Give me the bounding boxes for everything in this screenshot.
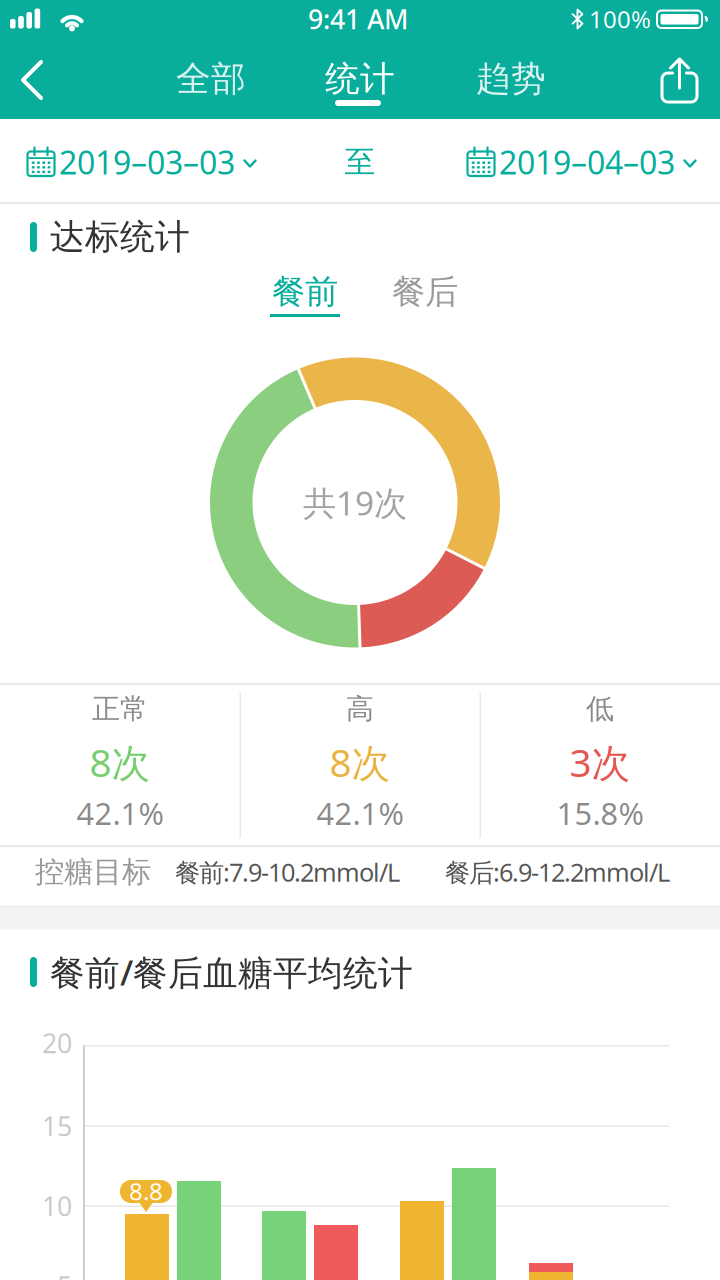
button[interactable]: 2019–03–03	[26, 124, 266, 200]
staticText: 42.1%	[316, 793, 403, 833]
staticText: 8.8	[129, 1175, 163, 1207]
staticText: 2019–03–03	[59, 141, 235, 183]
staticText: 20	[42, 1025, 72, 1061]
staticText: 100%	[589, 3, 651, 35]
staticText: 餐后:6.9-12.2mmol/L	[445, 855, 670, 889]
staticText: 5	[57, 1268, 72, 1280]
staticText: 达标统计	[50, 216, 190, 258]
staticText: 3次	[569, 736, 630, 788]
staticText: 餐前/餐后血糖平均统计	[50, 949, 413, 995]
staticText: 餐前:7.9-10.2mmol/L	[175, 855, 400, 889]
staticText: 控糖目标	[35, 854, 151, 890]
staticText: 2019–04–03	[499, 141, 675, 183]
staticText: 全部	[176, 58, 246, 100]
button[interactable]: 统计	[305, 49, 415, 109]
staticText: 15	[42, 1108, 72, 1144]
staticText: 42.1%	[76, 793, 163, 833]
button[interactable]: 2019–04–03	[466, 124, 706, 200]
staticText: 9:41 AM	[308, 1, 408, 37]
staticText: 10	[42, 1188, 72, 1224]
staticText: 8次	[89, 736, 150, 788]
button[interactable]: 全部	[156, 49, 266, 109]
staticText: 15.8%	[556, 793, 643, 833]
button[interactable]: Back	[19, 57, 49, 103]
button[interactable]: 餐前	[255, 265, 355, 319]
staticText: 高	[346, 692, 374, 726]
staticText: 8次	[329, 736, 390, 788]
staticText: 至	[344, 143, 375, 181]
staticText: 趋势	[476, 58, 546, 100]
staticText: 统计	[325, 58, 395, 100]
staticText: 餐前	[272, 271, 338, 312]
button[interactable]: 趋势	[456, 49, 566, 109]
staticText: 正常	[92, 692, 148, 726]
staticText: 共19次	[303, 480, 407, 525]
staticText: 低	[586, 692, 614, 726]
button[interactable]: Share	[661, 58, 699, 104]
button[interactable]: 餐后	[375, 265, 475, 319]
staticText: 餐后	[392, 271, 458, 312]
